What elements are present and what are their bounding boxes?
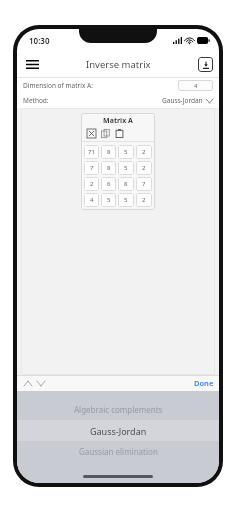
button[interactable]: Gauss-Jordan <box>162 96 213 105</box>
staticText: Inverse matrix <box>86 58 151 71</box>
staticText: 5 <box>124 196 128 204</box>
staticText: Matrix A <box>81 116 155 126</box>
staticText: 5 <box>124 164 128 172</box>
staticText: Method: <box>23 96 49 105</box>
button[interactable]: Paste <box>114 128 125 139</box>
staticText: Gauss-Jordan <box>162 96 203 105</box>
button[interactable]: 5 <box>118 145 134 159</box>
button[interactable]: 8 <box>118 177 134 191</box>
staticText: 8 <box>107 164 111 172</box>
staticText: 2 <box>142 148 146 156</box>
staticText: Gaussian elimination <box>79 446 158 457</box>
button[interactable]: 4 <box>178 80 213 91</box>
button[interactable]: Resize <box>86 128 97 139</box>
staticText: 8 <box>124 180 128 188</box>
button[interactable]: 7 <box>136 177 152 191</box>
staticText: 2 <box>142 164 146 172</box>
button[interactable]: Menu <box>22 54 42 74</box>
staticText: 4 <box>90 196 94 204</box>
button[interactable]: 2 <box>84 177 99 191</box>
button[interactable]: Gauss-Jordan <box>17 420 219 441</box>
staticText: Gauss-Jordan <box>90 425 147 437</box>
button[interactable]: 71 <box>84 145 99 159</box>
button[interactable]: 2 <box>136 145 152 159</box>
staticText: 7 <box>90 164 94 172</box>
staticText: 7 <box>142 180 146 188</box>
staticText: 10:30 <box>29 35 50 46</box>
button[interactable]: Algebraic complements <box>17 399 219 420</box>
staticText: 4 <box>194 82 198 90</box>
button[interactable]: Done <box>194 378 214 388</box>
button[interactable]: Previous <box>22 378 33 389</box>
button[interactable]: Next <box>35 378 46 389</box>
button[interactable]: Gaussian elimination <box>17 441 219 462</box>
button[interactable]: 5 <box>101 193 116 207</box>
staticText: 6 <box>107 180 111 188</box>
button[interactable]: 5 <box>118 193 134 207</box>
button[interactable]: 4 <box>84 193 99 207</box>
button[interactable]: 7 <box>84 161 99 175</box>
staticText: Algebraic complements <box>74 404 163 415</box>
button[interactable]: 8 <box>101 161 116 175</box>
button[interactable]: Download <box>198 57 213 72</box>
button[interactable]: 5 <box>118 161 134 175</box>
staticText: 5 <box>124 148 128 156</box>
button[interactable]: 2 <box>136 161 152 175</box>
staticText: 8 <box>107 148 111 156</box>
staticText: Done <box>194 378 214 388</box>
button[interactable]: 2 <box>136 193 152 207</box>
staticText: 71 <box>88 148 95 156</box>
staticText: 5 <box>107 196 111 204</box>
button[interactable]: Copy <box>100 128 111 139</box>
staticText: 2 <box>90 180 94 188</box>
staticText: Dimension of matrix A: <box>23 81 93 90</box>
staticText: 2 <box>142 196 146 204</box>
button[interactable]: 6 <box>101 177 116 191</box>
button[interactable]: 8 <box>101 145 116 159</box>
